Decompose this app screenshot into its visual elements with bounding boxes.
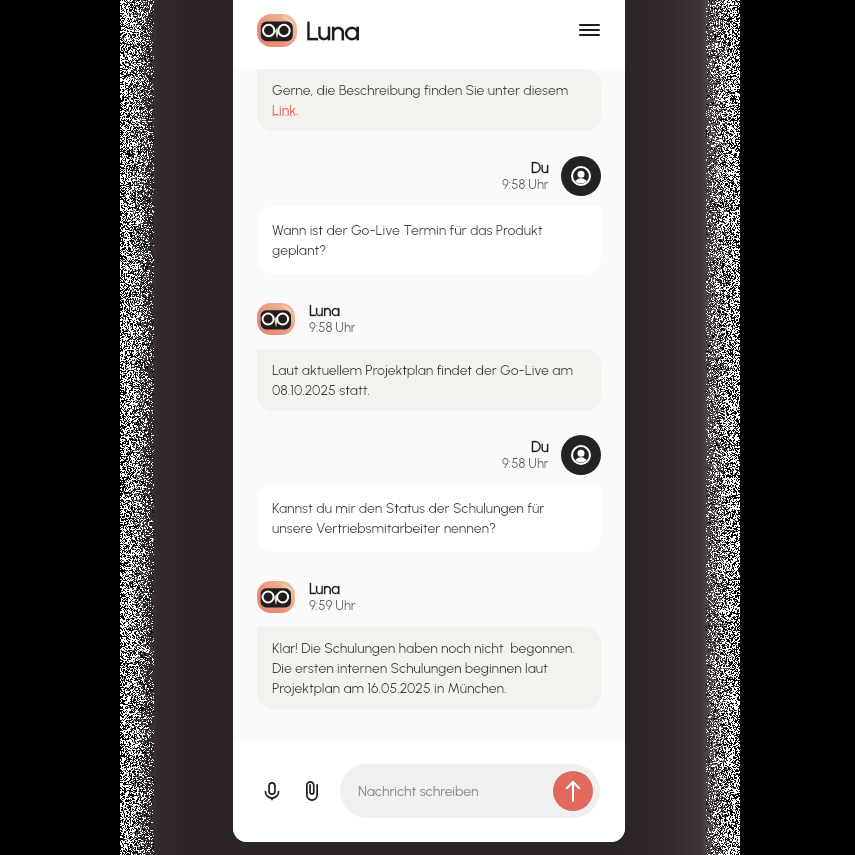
staticText: Du [531,159,549,177]
staticText: Luna [309,302,340,320]
button[interactable]: Laut aktuellem Projektplan findet der Go… [257,349,601,411]
button[interactable]: Kannst du mir den Status der Schulungen … [257,484,601,552]
button[interactable]: Menu [575,16,603,44]
button[interactable]: Gerne, die Beschreibung finden Sie unter… [257,69,601,131]
staticText: Nachricht schreiben [358,783,479,800]
button[interactable]: Attach file [298,777,326,805]
button[interactable]: Send message [553,771,593,811]
staticText: 9:58 Uhr [502,177,549,193]
staticText: 9:59 Uhr [309,598,356,614]
staticText: Du [531,438,549,456]
staticText: Wann ist der Go-Live Termin für das Prod… [272,222,586,258]
staticText: Gerne, die Beschreibung finden Sie unter… [272,82,586,118]
staticText: Kannst du mir den Status der Schulungen … [272,500,586,536]
button[interactable]: Wann ist der Go-Live Termin für das Prod… [257,206,601,274]
staticText: 9:58 Uhr [502,456,549,472]
button[interactable]: Nachricht schreiben [340,764,600,818]
button[interactable]: Klar! Die Schulungen haben noch nicht be… [257,627,601,709]
staticText: 9:58 Uhr [309,320,356,336]
staticText: Klar! Die Schulungen haben noch nicht be… [272,640,586,696]
staticText: Luna [309,580,340,598]
button[interactable]: Voice input [258,777,286,805]
staticText: Luna [306,15,360,46]
staticText: Laut aktuellem Projektplan findet der Go… [272,362,586,398]
